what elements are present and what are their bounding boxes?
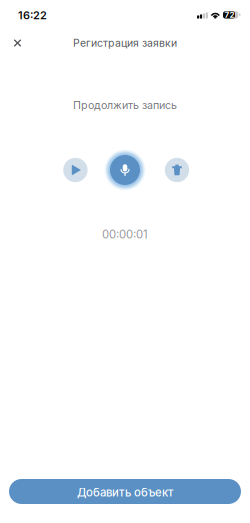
staticText: Продолжить запись (73, 98, 177, 111)
staticText: Регистрация заявки (73, 37, 177, 49)
staticText: Добавить объект (77, 486, 173, 499)
button[interactable]: Play (60, 155, 90, 185)
button[interactable]: Close (4, 30, 30, 56)
staticText: 16:22 (18, 9, 47, 22)
staticText: 00:00:01 (102, 228, 148, 241)
staticText: 72 (225, 10, 235, 20)
button[interactable]: Добавить объект (9, 479, 241, 504)
button[interactable]: Delete (162, 155, 192, 185)
button[interactable]: Record (104, 149, 146, 191)
